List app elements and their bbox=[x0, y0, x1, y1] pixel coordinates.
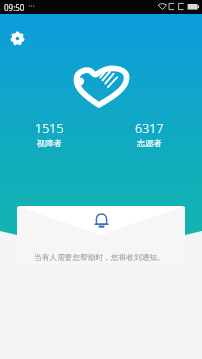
button[interactable]: 6317 bbox=[99, 120, 199, 148]
button[interactable]: 当有人需要您帮助时，您将收到通知。 bbox=[17, 206, 185, 267]
staticText: 视障者 bbox=[37, 138, 62, 148]
staticText: 09:50 bbox=[4, 2, 25, 13]
staticText: 志愿者 bbox=[137, 138, 162, 148]
button[interactable]: Settings bbox=[5, 26, 29, 50]
button[interactable]: 1515 bbox=[0, 120, 99, 148]
staticText: 当有人需要您帮助时，您将收到通知。 bbox=[34, 253, 165, 263]
staticText: 6317 bbox=[135, 120, 164, 137]
staticText: 1515 bbox=[35, 120, 64, 137]
